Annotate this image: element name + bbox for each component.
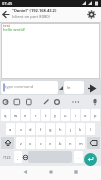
staticText: k (79, 127, 82, 132)
staticText: (client on port 8080) (12, 14, 50, 19)
button[interactable]: \n (64, 81, 84, 94)
button[interactable]: z (16, 137, 25, 149)
button[interactable] (47, 168, 55, 176)
staticText: n (69, 141, 72, 146)
button[interactable]: q (1, 109, 10, 121)
staticText: w (14, 113, 18, 118)
button[interactable]: v (46, 137, 55, 149)
button[interactable]: y (51, 109, 60, 121)
staticText: q (4, 113, 7, 118)
staticText: r (35, 113, 37, 118)
staticText: test (3, 23, 11, 28)
staticText: d (29, 127, 32, 132)
staticText: x (29, 141, 32, 146)
button[interactable] (72, 168, 80, 176)
button[interactable] (85, 8, 98, 21)
button[interactable]: r (31, 109, 40, 121)
button[interactable]: w (11, 109, 20, 121)
staticText: type command (5, 84, 34, 89)
staticText: h (59, 127, 62, 132)
staticText: v (49, 141, 52, 146)
staticText: s (20, 127, 22, 132)
button[interactable]: b (56, 137, 65, 149)
staticText: g (49, 127, 52, 132)
staticText: z (20, 141, 22, 146)
button[interactable]: k (76, 123, 85, 135)
button[interactable]: type command (1, 81, 58, 94)
button[interactable]: j (66, 123, 75, 135)
button[interactable]: o (81, 109, 90, 121)
staticText: b (59, 141, 62, 146)
staticText: 07:45 (2, 1, 13, 6)
staticText: hello world! (3, 27, 26, 32)
staticText: c (40, 141, 42, 146)
button[interactable]: x (26, 137, 35, 149)
button[interactable] (1, 137, 14, 149)
button[interactable] (22, 151, 28, 163)
button[interactable]: t (41, 109, 50, 121)
staticText: t (45, 113, 47, 118)
button[interactable]: a (6, 123, 15, 135)
button[interactable]: g (46, 123, 55, 135)
staticText: . (78, 155, 80, 160)
button[interactable]: e (21, 109, 30, 121)
button[interactable] (21, 168, 29, 176)
staticText: f (40, 127, 42, 132)
button[interactable]: m (76, 137, 85, 149)
button[interactable]: n (66, 137, 75, 149)
staticText: p (94, 113, 97, 118)
button[interactable]: ?123 (1, 151, 13, 163)
button[interactable] (87, 137, 100, 149)
staticText: , (17, 155, 19, 160)
staticText: "Daniel" (192.168.43.2) (12, 8, 57, 13)
button[interactable]: f (36, 123, 45, 135)
staticText: o (84, 113, 87, 118)
button[interactable] (84, 153, 97, 166)
staticText: i (75, 113, 77, 118)
button[interactable]: d (26, 123, 35, 135)
staticText: l (90, 127, 92, 132)
button[interactable] (85, 81, 100, 95)
staticText: a (9, 127, 12, 132)
staticText: \n (67, 85, 71, 90)
button[interactable]: , (14, 151, 22, 163)
button[interactable] (1, 9, 11, 20)
staticText: m (79, 141, 83, 146)
staticText: j (70, 127, 72, 132)
button[interactable]: s (16, 123, 25, 135)
staticText: ?123 (3, 155, 11, 160)
button[interactable]: l (86, 123, 95, 135)
button[interactable]: c (36, 137, 45, 149)
button[interactable]: p (91, 109, 100, 121)
button[interactable]: i (71, 109, 80, 121)
button[interactable]: h (56, 123, 65, 135)
button[interactable]: u (61, 109, 70, 121)
staticText: e (24, 113, 27, 118)
staticText: y (54, 113, 57, 118)
staticText: u (64, 113, 67, 118)
